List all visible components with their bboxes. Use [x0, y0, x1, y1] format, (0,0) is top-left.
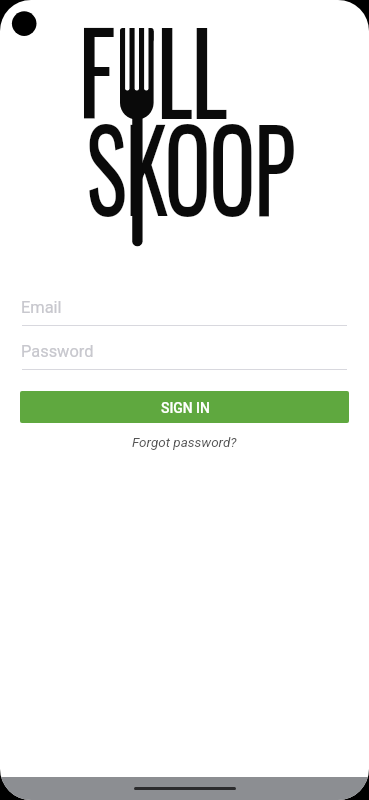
button[interactable]: Password: [0, 337, 369, 370]
other: Home gesture bar: [0, 777, 369, 800]
button[interactable]: Email: [0, 293, 369, 326]
staticText: LL: [156, 0, 226, 152]
staticText: Email: [21, 298, 62, 317]
staticText: SKOOP: [86, 82, 293, 249]
staticText: SIGN IN: [161, 400, 210, 416]
button[interactable]: SIGN IN: [20, 391, 349, 423]
button[interactable]: Forgot password?: [132, 434, 237, 450]
staticText: Password: [21, 342, 94, 361]
staticText: F: [78, 0, 116, 152]
